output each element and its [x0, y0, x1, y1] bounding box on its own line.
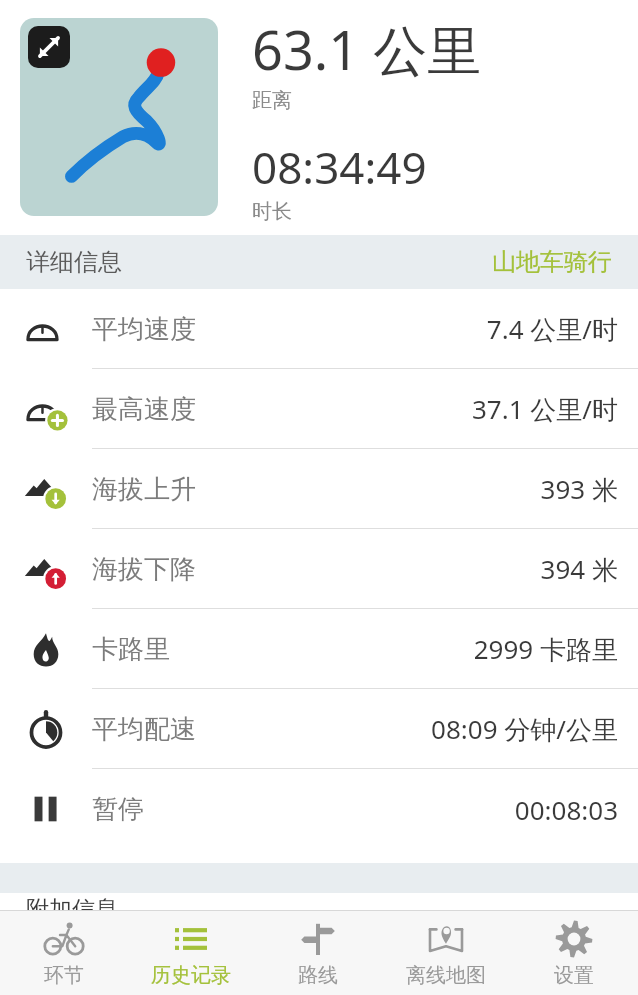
- staticText: 设置: [554, 963, 594, 988]
- button[interactable]: 暂停: [0, 769, 638, 849]
- button[interactable]: 离线地图: [382, 911, 510, 995]
- staticText: 暂停: [92, 793, 144, 826]
- staticText: 00:08:03: [514, 792, 618, 827]
- button[interactable]: 环节: [0, 911, 127, 995]
- staticText: 2999 卡路里: [473, 631, 618, 667]
- staticText: 离线地图: [406, 963, 486, 988]
- button[interactable]: Expand map: [20, 18, 218, 216]
- staticText: 08:34:49: [252, 137, 427, 197]
- staticText: 最高速度: [92, 393, 196, 426]
- staticText: 平均配速: [92, 713, 196, 746]
- staticText: 历史记录: [151, 963, 231, 988]
- button[interactable]: 海拔上升: [0, 449, 638, 529]
- button[interactable]: 平均速度: [0, 289, 638, 369]
- button[interactable]: 历史记录: [127, 911, 254, 995]
- staticText: 海拔下降: [92, 553, 196, 586]
- button[interactable]: 路线: [254, 911, 382, 995]
- button[interactable]: 平均配速: [0, 689, 638, 769]
- staticText: 路线: [298, 963, 338, 988]
- staticText: 详细信息: [26, 247, 122, 277]
- staticText: 7.4 公里/时: [486, 311, 618, 347]
- staticText: 08:09 分钟/公里: [431, 711, 618, 747]
- staticText: 平均速度: [92, 313, 196, 346]
- staticText: 394 米: [540, 551, 618, 587]
- button[interactable]: 海拔下降: [0, 529, 638, 609]
- button[interactable]: 最高速度: [0, 369, 638, 449]
- staticText: 环节: [44, 963, 84, 988]
- staticText: 63.1 公里: [252, 12, 482, 86]
- staticText: 海拔上升: [92, 473, 196, 506]
- staticText: 时长: [252, 199, 292, 224]
- button[interactable]: 设置: [510, 911, 638, 995]
- staticText: 37.1 公里/时: [471, 391, 618, 427]
- staticText: 距离: [252, 88, 292, 113]
- staticText: 卡路里: [92, 633, 170, 666]
- staticText: 山地车骑行: [492, 247, 612, 277]
- button[interactable]: 卡路里: [0, 609, 638, 689]
- staticText: 附加信息: [26, 895, 118, 910]
- staticText: 393 米: [540, 471, 618, 507]
